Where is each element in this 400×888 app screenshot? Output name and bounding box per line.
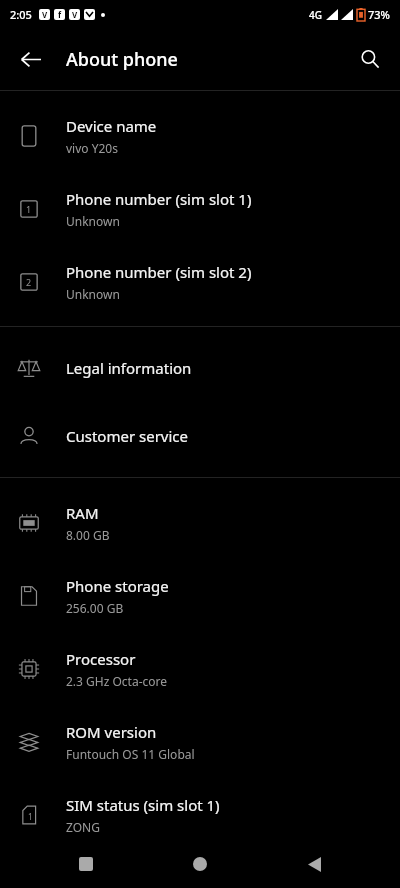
staticText: 1 [26, 203, 32, 215]
staticText: Phone number (sim slot 2) [66, 262, 252, 282]
staticText: V [42, 9, 48, 20]
staticText: SIM status (sim slot 1) [66, 795, 220, 815]
staticText: V [72, 9, 78, 20]
button[interactable]: Phone storage [0, 559, 400, 632]
staticText: Processor [66, 649, 136, 669]
staticText: 2.3 GHz Octa-core [66, 673, 168, 689]
staticText: f [58, 9, 62, 20]
button[interactable]: Processor [0, 632, 400, 705]
staticText: 4G [309, 8, 322, 22]
staticText: 1 [28, 811, 33, 822]
button[interactable]: Customer service [0, 402, 400, 470]
button[interactable]: 1 [0, 172, 400, 245]
staticText: Phone storage [66, 576, 169, 596]
button[interactable]: Device name [0, 99, 400, 172]
staticText: 256.00 GB [66, 600, 124, 616]
button[interactable]: 1 [0, 778, 400, 851]
staticText: RAM [66, 503, 99, 523]
button[interactable]: Back [286, 840, 342, 888]
button[interactable]: Home [172, 840, 228, 888]
button[interactable]: 1 [0, 851, 400, 888]
button[interactable]: 2 [0, 245, 400, 318]
staticText: SIM status (sim slot 2) [66, 851, 220, 871]
button[interactable]: Legal information [0, 334, 400, 402]
staticText: Unknown [66, 213, 120, 229]
staticText: 2 [26, 276, 32, 288]
button[interactable]: RAM [0, 486, 400, 559]
staticText: Phone number (sim slot 1) [66, 189, 252, 209]
staticText: Unknown [66, 286, 120, 302]
button[interactable]: Recent apps [58, 840, 114, 888]
button[interactable]: ROM version [0, 705, 400, 778]
staticText: Customer service [66, 426, 188, 446]
staticText: 2:05 [10, 7, 32, 22]
staticText: About phone [66, 47, 178, 72]
staticText: ZONG [66, 819, 100, 835]
button[interactable]: Search [348, 37, 392, 81]
staticText: 73% [368, 7, 390, 22]
button[interactable]: Back [8, 37, 52, 81]
staticText: Device name [66, 116, 157, 136]
staticText: vivo Y20s [66, 140, 118, 156]
staticText: Legal information [66, 358, 192, 378]
staticText: 8.00 GB [66, 527, 110, 543]
staticText: ROM version [66, 722, 157, 742]
staticText: Funtouch OS 11 Global [66, 746, 195, 762]
